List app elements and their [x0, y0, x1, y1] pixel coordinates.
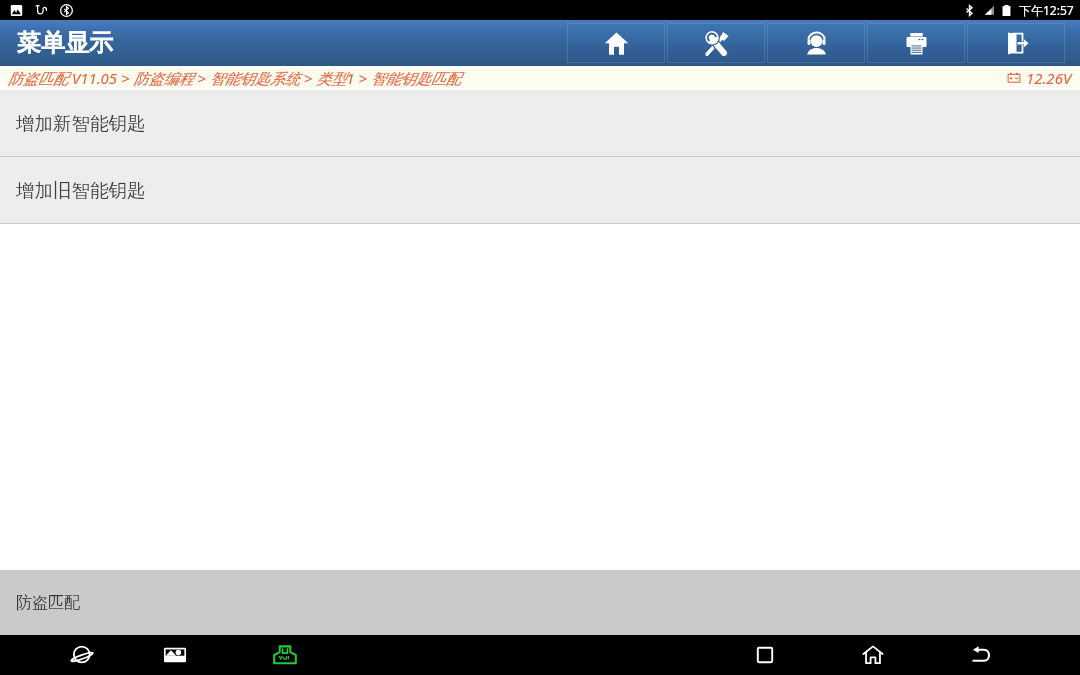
- button[interactable]: Browser: [58, 635, 106, 675]
- staticText: 增加新智能钥匙: [16, 112, 146, 135]
- staticText: 菜单显示: [17, 28, 113, 58]
- button[interactable]: Support: [767, 23, 865, 63]
- button[interactable]: Home: [849, 635, 897, 675]
- button[interactable]: Home: [567, 23, 665, 63]
- button[interactable]: Gallery: [151, 635, 199, 675]
- button[interactable]: Recents: [741, 635, 789, 675]
- staticText: 增加旧智能钥匙: [16, 179, 146, 202]
- button[interactable]: Tools: [667, 23, 765, 63]
- button[interactable]: Exit: [967, 23, 1065, 63]
- staticText: 防盗匹配 V11.05 > 防盗编程 > 智能钥匙系统 > 类型1 > 智能钥匙…: [8, 68, 461, 88]
- button[interactable]: Back: [958, 635, 1006, 675]
- staticText: 下午12:57: [1019, 2, 1074, 18]
- button[interactable]: 增加新智能钥匙: [0, 90, 1080, 156]
- button[interactable]: Print: [867, 23, 965, 63]
- button[interactable]: 增加旧智能钥匙: [0, 157, 1080, 223]
- staticText: 12.26V: [1026, 68, 1072, 88]
- button[interactable]: VCI: [261, 635, 309, 675]
- staticText: 防盗匹配: [16, 593, 80, 613]
